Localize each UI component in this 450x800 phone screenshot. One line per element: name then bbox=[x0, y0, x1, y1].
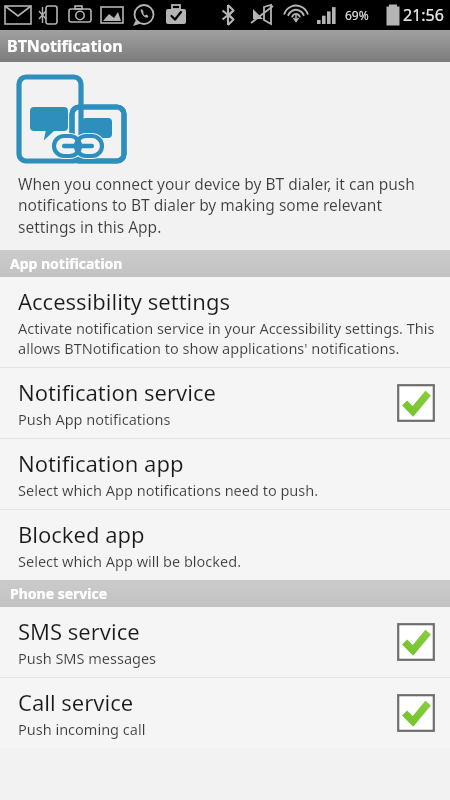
staticText: Phone service bbox=[10, 584, 108, 603]
staticText: Notification service bbox=[18, 377, 216, 407]
staticText: BTNotification bbox=[7, 35, 123, 57]
staticText: Push App notifications bbox=[18, 409, 171, 429]
staticText: Activate notification service in your Ac… bbox=[18, 318, 438, 358]
staticText: Select which App notifications need to p… bbox=[18, 480, 319, 500]
staticText: Blocked app bbox=[18, 519, 145, 549]
staticText: Call service bbox=[18, 687, 134, 717]
button[interactable]: Toggle bbox=[394, 381, 438, 425]
staticText: App notification bbox=[10, 254, 123, 273]
staticText: Notification app bbox=[18, 448, 184, 478]
button[interactable]: Notification service bbox=[0, 368, 450, 438]
staticText: When you connect your device by BT diale… bbox=[18, 173, 426, 238]
staticText: 21:56 bbox=[403, 4, 444, 26]
button[interactable]: Accessibility settings bbox=[0, 277, 450, 367]
button[interactable]: Toggle bbox=[394, 620, 438, 664]
button[interactable]: Toggle bbox=[394, 691, 438, 735]
staticText: Push SMS messages bbox=[18, 648, 157, 668]
staticText: Select which App will be blocked. bbox=[18, 551, 242, 571]
button[interactable]: Notification app bbox=[0, 439, 450, 509]
staticText: SMS service bbox=[18, 616, 140, 646]
staticText: Accessibility settings bbox=[18, 286, 230, 316]
button[interactable]: Call service bbox=[0, 678, 450, 748]
button[interactable]: Blocked app bbox=[0, 510, 450, 580]
button[interactable]: SMS service bbox=[0, 607, 450, 677]
staticText: 69% bbox=[345, 7, 369, 23]
staticText: Push incoming call bbox=[18, 719, 146, 739]
